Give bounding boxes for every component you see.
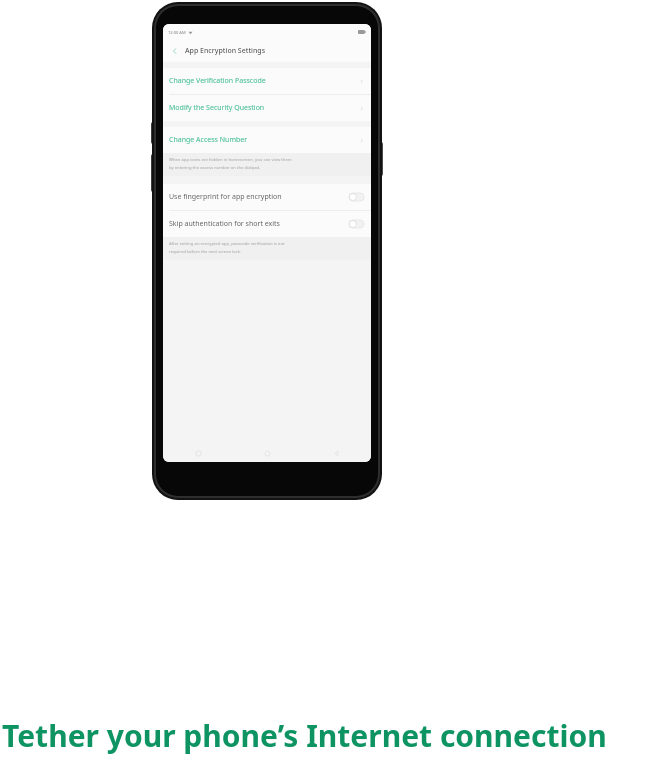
staticText: Change Access Number bbox=[169, 135, 248, 145]
button[interactable]: Toggle bbox=[349, 193, 364, 201]
button[interactable]: Back bbox=[163, 40, 371, 62]
button[interactable]: Use fingerprint for app encryption bbox=[163, 184, 371, 210]
staticText: Skip authentication for short exits bbox=[169, 219, 280, 229]
staticText: 12:00 AM bbox=[168, 30, 186, 35]
staticText: Modify the Security Question bbox=[169, 103, 265, 113]
button[interactable]: Toggle bbox=[349, 220, 364, 228]
staticText: required before the next screen lock. bbox=[169, 249, 242, 255]
staticText: by entering the access number on the dia… bbox=[169, 165, 261, 171]
button[interactable]: Recents bbox=[163, 444, 233, 462]
staticText: After setting an encrypted app, passcode… bbox=[169, 241, 285, 247]
button[interactable]: Back bbox=[302, 444, 371, 462]
staticText: App Encryption Settings bbox=[185, 46, 266, 56]
staticText: Change Verification Passcode bbox=[169, 76, 266, 86]
button[interactable]: Change Verification Passcode bbox=[163, 68, 371, 94]
button[interactable]: Skip authentication for short exits bbox=[163, 211, 371, 237]
button[interactable]: Change Access Number bbox=[163, 127, 371, 153]
button[interactable]: Back bbox=[169, 45, 181, 57]
staticText: Use fingerprint for app encryption bbox=[169, 192, 282, 202]
button[interactable]: Modify the Security Question bbox=[163, 95, 371, 121]
staticText: Tether your phone’s Internet connection bbox=[2, 715, 607, 756]
staticText: When app icons are hidden in homescreen,… bbox=[169, 157, 292, 163]
